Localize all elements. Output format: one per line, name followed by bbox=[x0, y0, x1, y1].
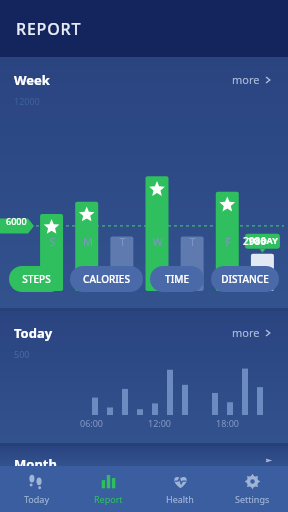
button[interactable]: STEPS bbox=[9, 266, 63, 292]
button[interactable]: Health bbox=[144, 466, 216, 512]
staticText: more bbox=[232, 72, 260, 87]
staticText: 18:00 bbox=[216, 417, 240, 429]
button[interactable]: Report bbox=[72, 466, 144, 512]
button[interactable]: more bbox=[228, 455, 276, 466]
staticText: M bbox=[83, 234, 93, 249]
staticText: Week bbox=[14, 71, 50, 89]
staticText: 500 bbox=[14, 348, 30, 360]
staticText: TIME bbox=[165, 272, 189, 286]
staticText: 12000 bbox=[14, 95, 40, 107]
button[interactable]: DISTANCE bbox=[211, 266, 279, 292]
button[interactable]: Today bbox=[0, 466, 72, 512]
staticText: Report bbox=[94, 493, 123, 505]
staticText: 12:00 bbox=[148, 417, 172, 429]
staticText: Settings bbox=[235, 493, 270, 505]
staticText: T bbox=[189, 234, 196, 249]
staticText: REPORT bbox=[16, 18, 82, 40]
button[interactable]: CALORIES bbox=[70, 266, 143, 292]
staticText: STEPS bbox=[22, 272, 51, 286]
staticText: W bbox=[152, 234, 163, 249]
staticText: 6000 bbox=[6, 215, 27, 227]
staticText: CALORIES bbox=[83, 272, 130, 286]
staticText: Health bbox=[166, 493, 194, 505]
button[interactable]: more bbox=[228, 321, 276, 344]
staticText: T bbox=[119, 234, 126, 249]
staticText: Today bbox=[24, 493, 49, 505]
staticText: DISTANCE bbox=[221, 272, 269, 286]
button[interactable]: more bbox=[228, 68, 276, 91]
staticText: F bbox=[225, 234, 231, 249]
staticText: 2986 bbox=[243, 234, 266, 248]
staticText: Month bbox=[14, 455, 57, 466]
staticText: Today bbox=[14, 324, 53, 342]
button[interactable]: Settings bbox=[216, 466, 288, 512]
staticText: more bbox=[232, 325, 260, 340]
staticText: TODAY bbox=[248, 234, 278, 246]
staticText: 06:00 bbox=[80, 417, 104, 429]
staticText: S bbox=[49, 234, 56, 249]
button[interactable]: TIME bbox=[150, 266, 204, 292]
